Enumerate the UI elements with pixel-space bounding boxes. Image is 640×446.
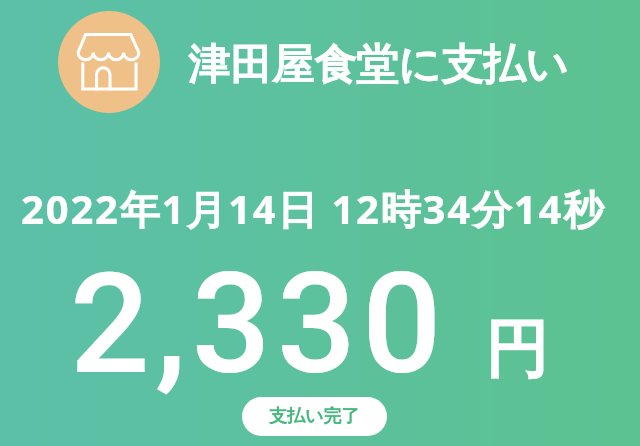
staticText: 円 <box>485 310 548 389</box>
staticText: 2,330 <box>70 242 448 406</box>
staticText: 支払い完了 <box>269 405 360 428</box>
staticText: 津田屋食堂に支払い <box>188 39 568 92</box>
button[interactable]: 支払い完了 <box>242 397 387 436</box>
staticText: 2022年1月14日 12時34分14秒 <box>0 181 633 236</box>
